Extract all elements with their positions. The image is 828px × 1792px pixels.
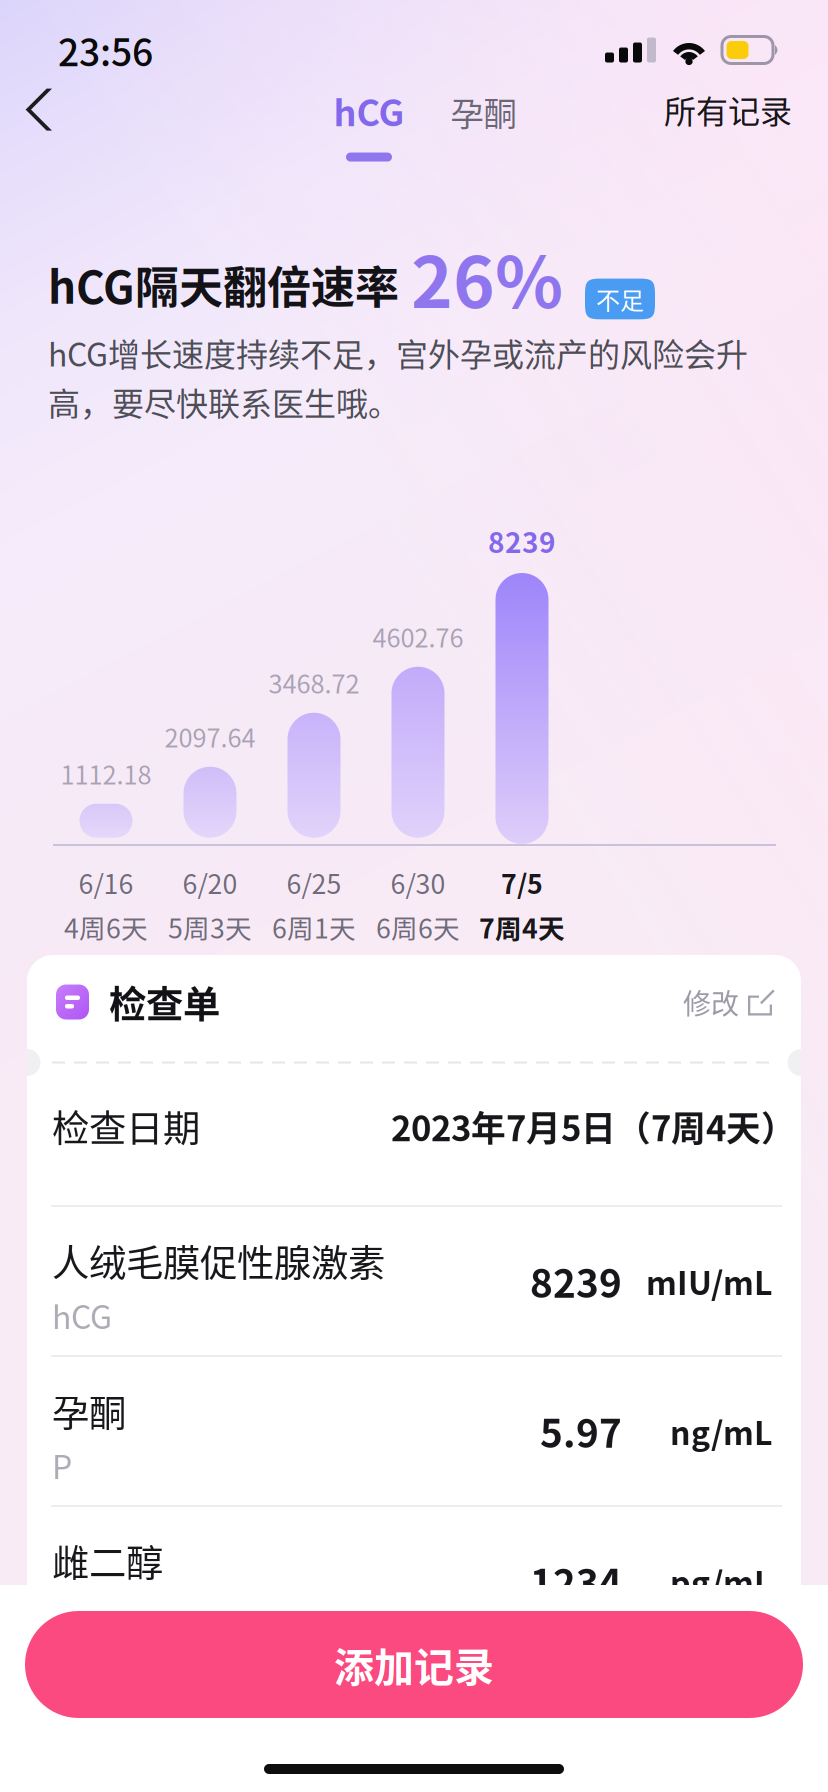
button[interactable]: 修改 (683, 982, 776, 1022)
staticText: 3468.72 (268, 664, 359, 701)
staticText: 8239 (488, 520, 556, 561)
staticText: E2 (52, 1592, 89, 1638)
staticText: 2097.64 (164, 718, 255, 755)
button[interactable]: 所有记录 (644, 70, 828, 167)
staticText: 6/16 (78, 863, 133, 902)
staticText: 7/5 (501, 863, 543, 902)
staticText: 4602.76 (372, 618, 463, 655)
staticText: 8239 (530, 1253, 622, 1309)
staticText: hCG增长速度持续不足，宫外孕或流产的风险会升高，要尽快联系医生哦。 (48, 329, 748, 425)
staticText: 5周3天 (168, 908, 252, 946)
staticText: 修改 (683, 982, 739, 1022)
staticText: 检查日期 (52, 1099, 200, 1153)
staticText: 26% (411, 226, 563, 328)
staticText: 7周4天 (479, 908, 565, 946)
staticText: 2023年7月5日（7周4天） (391, 1101, 796, 1151)
staticText: 人绒毛膜促性腺激素 (52, 1234, 385, 1288)
staticText: 23:56 (58, 23, 153, 77)
staticText: hCG隔天翻倍速率 (48, 253, 399, 316)
staticText: 不足 (596, 282, 644, 316)
staticText: 6/25 (286, 863, 341, 902)
staticText: 1234 (530, 1553, 622, 1609)
staticText: P (52, 1442, 72, 1488)
staticText: 6/30 (390, 863, 445, 902)
button[interactable]: 添加记录 (25, 1611, 803, 1718)
staticText: ng/mL (670, 1408, 772, 1454)
staticText: 添加记录 (334, 1635, 494, 1693)
staticText: 孕酮 (52, 1384, 126, 1438)
staticText: 雌二醇 (52, 1534, 163, 1588)
staticText: 6周6天 (376, 908, 460, 946)
button[interactable]: 孕酮 (424, 71, 542, 169)
staticText: 1112.18 (60, 755, 151, 792)
staticText: 6周1天 (272, 908, 356, 946)
staticText: hCG (52, 1292, 112, 1338)
staticText: 所有记录 (664, 86, 792, 133)
staticText: 检查单 (109, 975, 220, 1029)
staticText: pg/mL (670, 1558, 772, 1604)
staticText: 4周6天 (64, 908, 148, 946)
button[interactable]: hCG (313, 70, 424, 169)
button[interactable]: Back (0, 79, 78, 159)
staticText: 5.97 (540, 1403, 622, 1459)
staticText: 6/20 (182, 863, 237, 902)
staticText: 孕酮 (450, 87, 516, 136)
staticText: hCG (333, 84, 404, 136)
staticText: mIU/mL (646, 1258, 772, 1304)
